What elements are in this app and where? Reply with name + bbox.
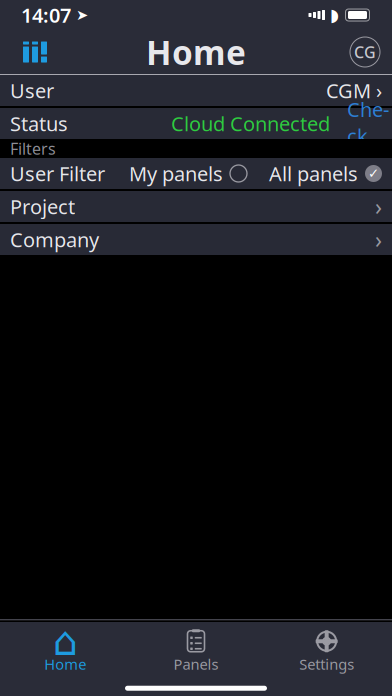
button[interactable]: Account CG bbox=[350, 37, 380, 67]
staticText: Company bbox=[10, 226, 99, 253]
button[interactable]: Project bbox=[0, 191, 392, 222]
button[interactable]: Check bbox=[330, 96, 392, 151]
button[interactable]: ⌂ bbox=[0, 625, 131, 678]
staticText: ⌂ bbox=[53, 619, 78, 664]
staticText: ✓ bbox=[368, 166, 379, 181]
staticText: CG bbox=[354, 41, 376, 63]
button[interactable]: All panels bbox=[269, 160, 382, 187]
staticText: User bbox=[10, 77, 54, 104]
staticText: Filters bbox=[10, 138, 56, 159]
button[interactable]: My panels bbox=[129, 160, 247, 187]
staticText: Check bbox=[347, 96, 389, 149]
button[interactable]: Company bbox=[0, 224, 392, 255]
staticText: Project bbox=[10, 193, 75, 220]
button[interactable]: Panels bbox=[131, 625, 261, 678]
staticText: › bbox=[371, 77, 382, 104]
staticText: Panels bbox=[173, 654, 218, 674]
staticText: 14:07 bbox=[21, 2, 71, 28]
staticText: CGM bbox=[326, 77, 371, 104]
staticText: User Filter bbox=[10, 160, 105, 187]
staticText: ◗ bbox=[330, 5, 339, 25]
staticText: All panels bbox=[269, 160, 358, 187]
staticText: › bbox=[375, 191, 382, 221]
button[interactable]: User bbox=[0, 75, 392, 106]
staticText: Home bbox=[44, 654, 86, 674]
button[interactable]: Settings bbox=[261, 625, 392, 678]
staticText: Home bbox=[146, 30, 246, 74]
staticText: Settings bbox=[299, 654, 354, 674]
staticText: › bbox=[375, 224, 382, 254]
staticText: Status bbox=[10, 110, 68, 137]
staticText: My panels bbox=[129, 160, 223, 187]
staticText: ➤ bbox=[76, 7, 88, 23]
staticText: Cloud Connected bbox=[171, 110, 330, 137]
button[interactable]: App logo bbox=[12, 33, 58, 70]
